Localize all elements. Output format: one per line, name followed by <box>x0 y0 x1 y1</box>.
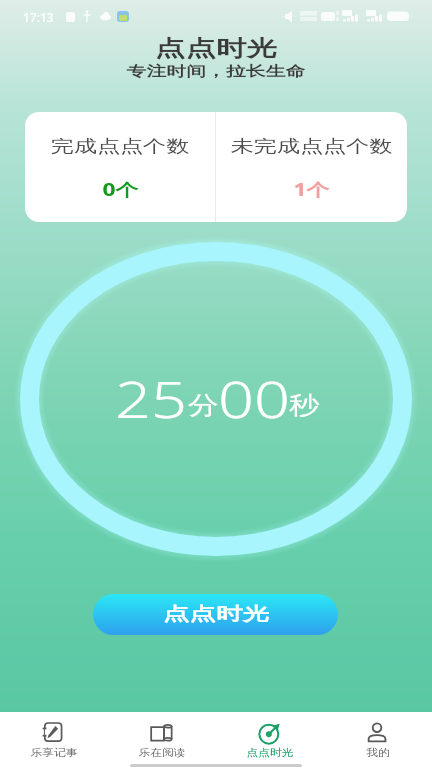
button[interactable]: 点点时光 <box>93 594 338 635</box>
staticText: 乐享记事 <box>30 746 78 759</box>
button[interactable]: 乐在阅读 <box>108 712 216 768</box>
other: 乐享记事 <box>42 722 66 746</box>
staticText: 1个 <box>293 178 330 201</box>
staticText: 专注时间，拉长生命 <box>126 63 305 81</box>
staticText: 00 <box>218 365 291 433</box>
staticText: 我的 <box>366 746 390 759</box>
staticText: 完成点点个数 <box>51 136 189 157</box>
staticText: 秒 <box>289 390 319 421</box>
button[interactable]: 点点时光 <box>216 712 324 768</box>
staticText: 分 <box>188 390 218 421</box>
staticText: 25 <box>115 365 188 433</box>
staticText: 17:13 <box>23 9 54 25</box>
staticText: 点点时光 <box>246 746 294 759</box>
staticText: 点点时光 <box>163 603 269 626</box>
staticText: 点点时光 <box>155 35 277 63</box>
button[interactable]: 乐享记事 <box>0 712 108 768</box>
button[interactable]: 未完成点点个数 <box>216 112 407 222</box>
staticText: 乐在阅读 <box>138 746 186 759</box>
other: 乐在阅读 <box>150 722 174 746</box>
other: 点点时光 <box>258 722 282 746</box>
button[interactable]: 我的 <box>324 712 432 768</box>
staticText: 0个 <box>102 178 139 201</box>
staticText: 未完成点点个数 <box>231 136 392 157</box>
button[interactable]: 完成点点个数 <box>25 112 215 222</box>
other: 我的 <box>366 722 390 746</box>
